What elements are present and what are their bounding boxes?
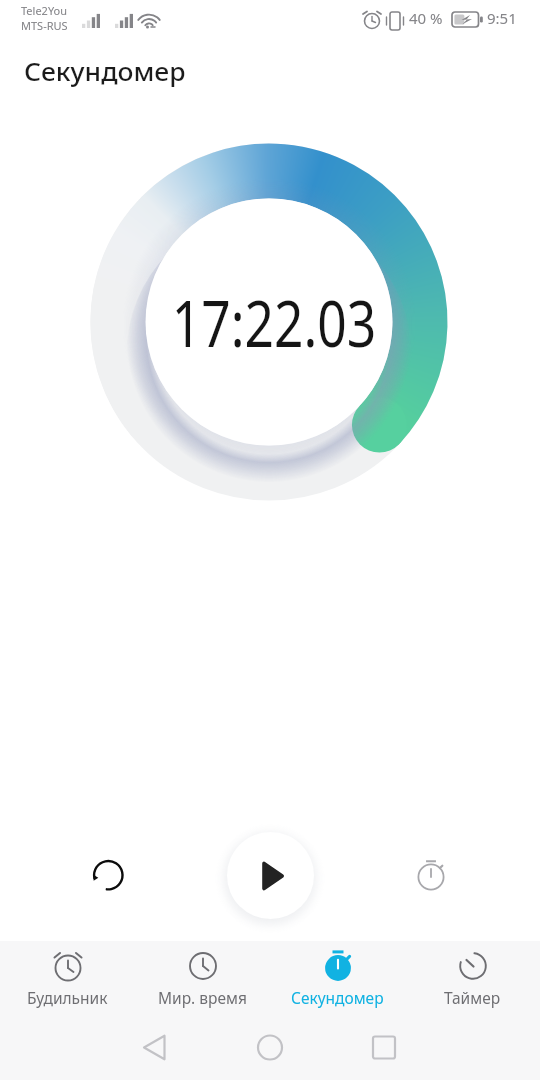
button[interactable]: Мир. время xyxy=(135,941,270,1015)
button[interactable]: Секундомер xyxy=(270,941,405,1015)
button[interactable]: Сброс xyxy=(78,845,138,905)
button[interactable]: Будильник xyxy=(0,941,135,1015)
button[interactable]: Таймер xyxy=(405,941,540,1015)
staticText: Будильник xyxy=(27,987,108,1008)
staticText: Мир. время xyxy=(158,987,247,1008)
button[interactable]: Круг xyxy=(401,845,461,905)
staticText: 40 % xyxy=(409,8,443,28)
staticText: MTS-RUS xyxy=(21,18,68,33)
staticText: Секундомер xyxy=(291,987,384,1008)
staticText: 9:51 xyxy=(487,8,517,28)
button[interactable]: Старт xyxy=(227,832,314,919)
staticText: Секундомер xyxy=(24,54,186,88)
staticText: Таймер xyxy=(444,987,501,1008)
staticText: 17:22.03 xyxy=(172,279,376,366)
staticText: Tele2You xyxy=(21,3,68,18)
